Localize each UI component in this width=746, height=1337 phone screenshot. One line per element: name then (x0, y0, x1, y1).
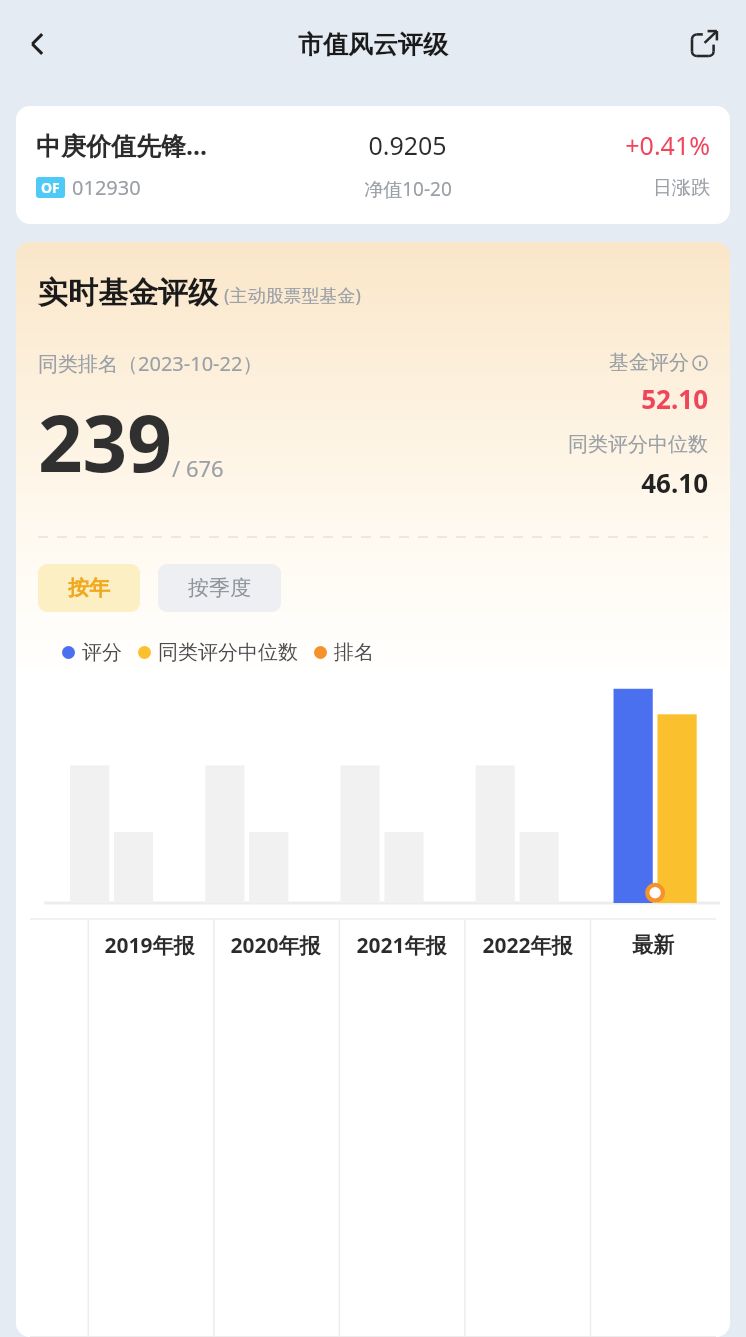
button[interactable]: Back (10, 16, 66, 72)
button[interactable]: 中庚价值先锋... (16, 106, 730, 224)
staticText: 2021年报 (356, 931, 447, 960)
staticText: 市值风云评级 (298, 29, 448, 60)
staticText: 012930 (72, 174, 141, 201)
staticText: 中庚价值先锋... (36, 128, 208, 162)
staticText: 日涨跌 (653, 176, 710, 200)
staticText: 按季度 (188, 575, 251, 601)
staticText: 基金评分 (609, 350, 689, 375)
staticText: 239 (38, 389, 172, 495)
staticText: 排名 (334, 640, 374, 665)
other: Info (692, 355, 708, 371)
staticText: 按年 (68, 575, 110, 601)
staticText: 52.10 (641, 381, 708, 416)
staticText: / 676 (172, 453, 224, 483)
staticText: 实时基金评级 (38, 274, 218, 312)
staticText: 最新 (632, 932, 674, 958)
staticText: 0.9205 (368, 128, 447, 162)
button[interactable]: 按季度 (158, 564, 281, 612)
staticText: 2019年报 (104, 931, 195, 960)
staticText: 评分 (82, 640, 122, 665)
button[interactable]: Share (676, 16, 732, 72)
staticText: 46.10 (641, 465, 708, 500)
staticText: +0.41% (625, 128, 710, 162)
staticText: OF (41, 178, 60, 197)
staticText: 净值10-20 (364, 176, 452, 202)
staticText: 2020年报 (230, 931, 321, 960)
staticText: 同类评分中位数 (158, 640, 298, 665)
staticText: 2022年报 (482, 931, 573, 960)
staticText: 同类评分中位数 (568, 432, 708, 457)
button[interactable]: 按年 (38, 564, 140, 612)
staticText: (主动股票型基金) (224, 283, 361, 308)
staticText: 同类排名（2023-10-22） (38, 350, 263, 377)
